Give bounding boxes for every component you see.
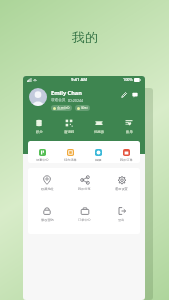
staticText: 我的 bbox=[72, 29, 98, 45]
staticText: 积分 bbox=[36, 130, 43, 134]
staticText: 通用设置 bbox=[115, 187, 128, 191]
button[interactable]: 修改密码 bbox=[28, 206, 66, 222]
staticText: 订单中心 bbox=[78, 218, 91, 222]
button[interactable]: 优惠券 bbox=[84, 119, 114, 134]
button[interactable]: 登出 bbox=[103, 206, 140, 222]
button[interactable]: 签到 bbox=[75, 105, 90, 111]
button[interactable]: 会员中心 bbox=[51, 105, 72, 111]
button[interactable]: 收藏地址 bbox=[28, 175, 66, 191]
staticText: ID:20244 bbox=[68, 98, 84, 103]
button[interactable]: 邀请码 bbox=[54, 119, 84, 134]
staticText: 100% bbox=[123, 77, 133, 82]
staticText: 待办清单 bbox=[64, 158, 77, 162]
staticText: 邀请码 bbox=[64, 130, 75, 134]
button[interactable]: 订单中心 bbox=[66, 206, 103, 222]
staticText: 普通会员 bbox=[51, 98, 66, 103]
staticText: 签到 bbox=[81, 106, 88, 110]
staticText: 账单 bbox=[126, 130, 133, 134]
button[interactable]: Edit profile bbox=[119, 90, 128, 99]
button[interactable]: 我的订单 bbox=[112, 149, 140, 162]
staticText: 优惠券 bbox=[94, 130, 105, 134]
button[interactable]: 积分 bbox=[24, 119, 54, 134]
staticText: 收藏地址 bbox=[41, 187, 54, 191]
button[interactable]: 提醒 bbox=[84, 149, 112, 162]
staticText: Emily Chan bbox=[51, 89, 82, 97]
button[interactable]: 记事中心 bbox=[28, 149, 56, 162]
staticText: 登出 bbox=[118, 218, 125, 222]
button[interactable]: 账单 bbox=[114, 119, 144, 134]
staticText: 我的分享 bbox=[78, 187, 91, 191]
staticText: 记事中心 bbox=[36, 158, 49, 162]
staticText: 我的订单 bbox=[120, 158, 133, 162]
button[interactable]: 通用设置 bbox=[103, 175, 140, 191]
button[interactable]: Messages bbox=[130, 90, 139, 99]
staticText: 提醒 bbox=[95, 158, 102, 162]
button[interactable]: 待办清单 bbox=[56, 149, 84, 162]
staticText: 会员中心 bbox=[57, 106, 70, 110]
staticText: 修改密码 bbox=[41, 218, 54, 222]
staticText: 9:41 AM bbox=[71, 77, 88, 83]
button[interactable]: 我的分享 bbox=[66, 175, 103, 191]
